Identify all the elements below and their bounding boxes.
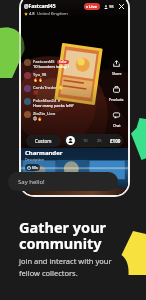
button[interactable]: Close (118, 3, 125, 10)
button[interactable]: Share (110, 57, 123, 76)
staticText: Seller (59, 60, 67, 64)
staticText: Live (89, 4, 98, 9)
staticText: 10 boosters today ! (33, 64, 69, 69)
staticText: 4.8 (29, 11, 35, 16)
button[interactable]: Live (84, 3, 100, 10)
staticText: 🔥🔥 (33, 77, 43, 82)
staticText: Products (109, 97, 124, 102)
staticText: 25 (97, 138, 102, 143)
staticText: 98 (109, 4, 114, 9)
staticText: United Kingdom (37, 11, 68, 16)
staticText: Custom (35, 138, 52, 144)
staticText: 10 (83, 138, 88, 143)
button[interactable]: Chat (110, 109, 123, 128)
button[interactable]: Products (109, 83, 124, 102)
staticText: 💯 (33, 90, 38, 95)
staticText: PokeMan24 ⚫ (33, 98, 61, 103)
staticText: ZinZin_Lion (33, 111, 56, 116)
staticText: £100 (110, 138, 121, 144)
staticText: Share (112, 71, 122, 76)
button[interactable]: Bid (66, 136, 75, 145)
staticText: Description (25, 157, 44, 162)
staticText: Say hello! (18, 178, 45, 186)
staticText: Chat (113, 123, 121, 128)
staticText: 60s (32, 165, 38, 170)
staticText: Charmander (25, 149, 63, 157)
staticText: Tyu_98 (33, 72, 47, 77)
staticText: 😍🔥 (33, 116, 43, 121)
button[interactable]: Custom (26, 135, 61, 147)
staticText: @Fastcard45 (24, 3, 56, 10)
staticText: How many packs left? (33, 103, 74, 108)
staticText: Fastcard45 (33, 59, 55, 64)
staticText: join and interact with your fellow colle… (19, 256, 112, 279)
staticText: CardsTrader 🌟 (33, 85, 64, 90)
staticText: Gather your community (19, 217, 107, 253)
button[interactable]: Say hello! (8, 172, 118, 191)
